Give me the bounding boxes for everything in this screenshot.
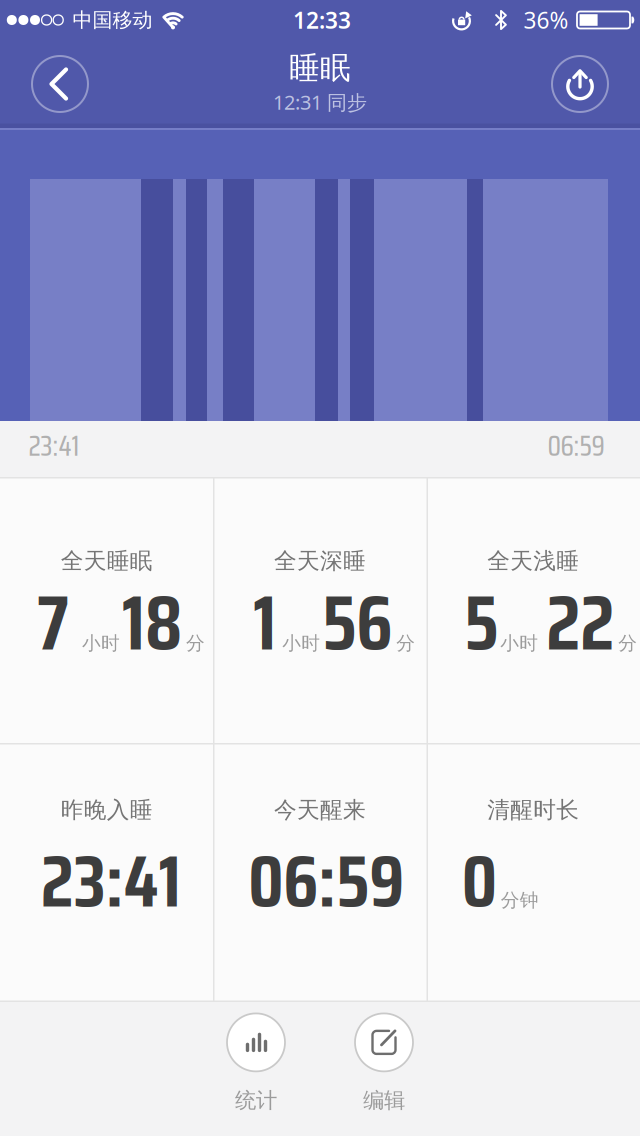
staticText: 小时 [282, 632, 320, 655]
staticText: 全天浅睡 [487, 547, 579, 575]
staticText: 分 [396, 632, 415, 655]
staticText: 全天睡眠 [61, 547, 153, 575]
staticText: 56 [322, 563, 392, 683]
button[interactable]: Back [32, 56, 88, 112]
staticText: 5 [464, 563, 498, 683]
staticText: 0 [462, 823, 497, 939]
staticText: 23:41 [41, 823, 181, 939]
staticText: 分 [186, 632, 205, 655]
staticText: 06:59 [248, 823, 404, 939]
button[interactable]: 统计 [206, 1014, 306, 1112]
staticText: 分 [618, 632, 637, 655]
staticText: 18 [122, 563, 182, 683]
button[interactable]: Share [552, 56, 608, 112]
staticText: 中国移动 [72, 8, 152, 32]
staticText: 小时 [82, 632, 120, 655]
staticText: 06:59 [547, 424, 604, 468]
staticText: 22 [546, 563, 614, 683]
staticText: 清醒时长 [487, 796, 579, 824]
staticText: 分钟 [501, 889, 539, 912]
staticText: 7 [37, 563, 69, 683]
staticText: 昨晚入睡 [61, 796, 153, 824]
staticText: 36% [523, 5, 568, 35]
staticText: 23:41 [28, 424, 79, 468]
staticText: 1 [253, 563, 276, 683]
staticText: 12:33 [293, 5, 351, 35]
staticText: 编辑 [363, 1087, 405, 1114]
staticText: 今天醒来 [274, 796, 366, 824]
staticText: 睡眠 [289, 49, 351, 87]
staticText: 小时 [500, 632, 538, 655]
staticText: 12:31 同步 [273, 89, 367, 115]
staticText: 统计 [235, 1087, 277, 1114]
button[interactable]: 编辑 [334, 1014, 434, 1112]
staticText: 全天深睡 [274, 547, 366, 575]
